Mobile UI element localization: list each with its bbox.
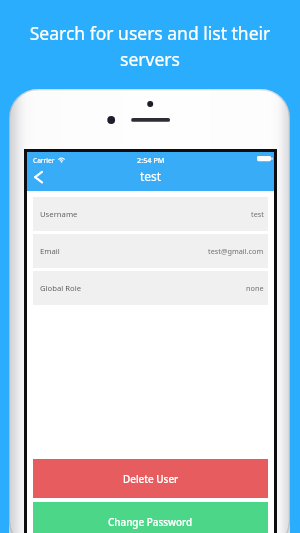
staticText: Change Password <box>108 515 193 528</box>
button[interactable]: Username <box>33 197 268 231</box>
button[interactable]: Delete User <box>33 459 268 498</box>
button[interactable]: Email <box>33 234 268 268</box>
staticText: test@gmail.com <box>208 246 264 256</box>
staticText: Username <box>40 209 78 219</box>
button[interactable]: Change Password <box>33 502 268 533</box>
staticText: test <box>140 168 162 184</box>
button[interactable]: Back <box>29 165 55 191</box>
staticText: Delete User <box>123 472 179 485</box>
staticText: none <box>246 283 264 293</box>
staticText: Carrier <box>33 156 55 165</box>
staticText: test <box>251 209 264 219</box>
staticText: 2:54 PM <box>137 155 165 165</box>
staticText: Search for users and list their servers <box>10 21 290 71</box>
button[interactable]: Global Role <box>33 271 268 305</box>
staticText: Email <box>40 246 60 256</box>
staticText: Global Role <box>40 283 82 293</box>
